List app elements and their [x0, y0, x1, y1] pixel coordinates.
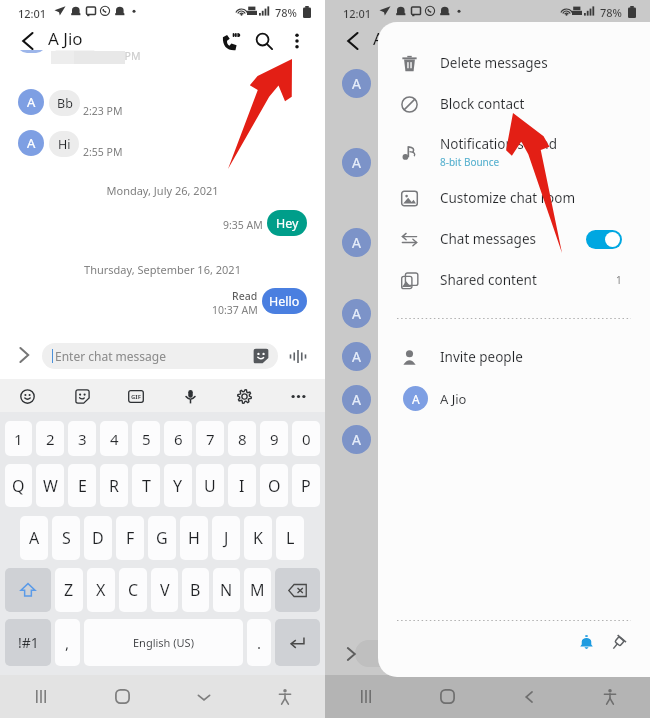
staticText: A: [27, 93, 36, 111]
button[interactable]: Hide keyboard: [163, 675, 244, 718]
button[interactable]: Enter: [275, 619, 320, 666]
button[interactable]: Back: [488, 675, 569, 718]
staticText: Read: [232, 289, 258, 303]
staticText: V: [160, 579, 170, 601]
staticText: 2: [46, 429, 55, 449]
staticText: K: [253, 527, 263, 549]
button[interactable]: 7: [196, 421, 224, 456]
button[interactable]: B: [182, 568, 209, 612]
button[interactable]: Invite people: [378, 341, 650, 373]
button[interactable]: K: [244, 516, 272, 560]
button[interactable]: H: [180, 516, 208, 560]
button[interactable]: T: [132, 464, 160, 507]
button[interactable]: Recents: [325, 675, 407, 718]
button[interactable]: More: [271, 379, 325, 413]
button[interactable]: R: [100, 464, 128, 507]
button[interactable]: Backspace: [275, 568, 320, 612]
button[interactable]: M: [244, 568, 271, 612]
button[interactable]: Notifications: [571, 627, 601, 657]
button[interactable]: A: [378, 384, 650, 413]
button[interactable]: P: [292, 464, 320, 507]
button[interactable]: 5: [132, 421, 160, 456]
staticText: .: [257, 633, 262, 653]
button[interactable]: Q: [5, 464, 32, 507]
button[interactable]: Call: [215, 27, 245, 55]
button[interactable]: Accessibility: [244, 675, 325, 718]
staticText: English (US): [133, 635, 194, 650]
button[interactable]: D: [84, 516, 112, 560]
button[interactable]: U: [196, 464, 224, 507]
button[interactable]: Microphone: [163, 379, 217, 413]
button[interactable]: J: [212, 516, 240, 560]
button[interactable]: Chat messages: [378, 223, 650, 255]
button[interactable]: 9: [260, 421, 288, 456]
staticText: H: [188, 527, 200, 549]
button[interactable]: Y: [164, 464, 192, 507]
button[interactable]: Pin: [603, 627, 633, 657]
button[interactable]: Search: [249, 27, 279, 55]
button[interactable]: Settings: [217, 379, 271, 413]
button[interactable]: Delete messages: [378, 47, 650, 79]
button[interactable]: More options: [282, 27, 312, 55]
button[interactable]: English (US): [84, 619, 243, 666]
button[interactable]: ,: [55, 619, 80, 666]
button[interactable]: !#1: [5, 619, 51, 666]
button[interactable]: Stickers: [55, 379, 109, 413]
button[interactable]: 1: [5, 421, 32, 456]
button[interactable]: S: [52, 516, 80, 560]
button[interactable]: A: [20, 516, 48, 560]
staticText: L: [286, 527, 295, 549]
button[interactable]: Back: [14, 28, 42, 54]
staticText: 2:23 PM: [83, 104, 123, 118]
button[interactable]: Accessibility: [569, 675, 650, 718]
button[interactable]: 8: [228, 421, 256, 456]
button[interactable]: X: [87, 568, 115, 612]
button[interactable]: Enter chat message: [42, 343, 278, 369]
button[interactable]: L: [276, 516, 304, 560]
staticText: Block contact: [440, 95, 525, 113]
button[interactable]: G: [148, 516, 176, 560]
button[interactable]: 4: [100, 421, 128, 456]
staticText: B: [190, 579, 201, 601]
button[interactable]: C: [119, 568, 147, 612]
button[interactable]: 0: [292, 421, 320, 456]
button[interactable]: GIF: [109, 379, 163, 413]
staticText: Q: [12, 475, 25, 497]
staticText: N: [220, 579, 233, 601]
button[interactable]: Recents: [0, 675, 82, 718]
button[interactable]: Voice input: [285, 343, 311, 369]
button[interactable]: E: [68, 464, 96, 507]
button[interactable]: Emoji: [0, 379, 55, 413]
button[interactable]: 3: [68, 421, 96, 456]
button[interactable]: Home: [407, 675, 488, 718]
button[interactable]: F: [116, 516, 144, 560]
button[interactable]: Notification sound: [378, 131, 650, 173]
staticText: S: [62, 527, 71, 549]
button[interactable]: Shift: [5, 568, 51, 612]
button[interactable]: W: [36, 464, 64, 507]
button[interactable]: Shared content: [378, 264, 650, 296]
button[interactable]: V: [151, 568, 178, 612]
button[interactable]: Customize chat room: [378, 182, 650, 214]
staticText: 0: [302, 429, 311, 449]
staticText: A: [352, 304, 361, 323]
staticText: Monday, July 26, 2021: [0, 183, 325, 198]
button[interactable]: 6: [164, 421, 192, 456]
button[interactable]: Z: [55, 568, 83, 612]
button[interactable]: N: [213, 568, 240, 612]
button[interactable]: 2: [36, 421, 64, 456]
button[interactable]: Expand toolbar: [12, 341, 36, 369]
staticText: A Jio: [373, 27, 408, 50]
button[interactable]: O: [260, 464, 288, 507]
staticText: 5: [142, 429, 151, 449]
staticText: 2:55 PM: [83, 145, 123, 159]
staticText: A: [352, 74, 361, 93]
button[interactable]: Chat messages toggle: [586, 230, 622, 249]
staticText: Chat messages: [440, 230, 536, 248]
button[interactable]: .: [247, 619, 271, 666]
staticText: Enter chat message: [55, 348, 166, 364]
button[interactable]: Block contact: [378, 88, 650, 120]
staticText: 78%: [275, 5, 297, 20]
button[interactable]: Home: [82, 675, 163, 718]
button[interactable]: I: [228, 464, 256, 507]
